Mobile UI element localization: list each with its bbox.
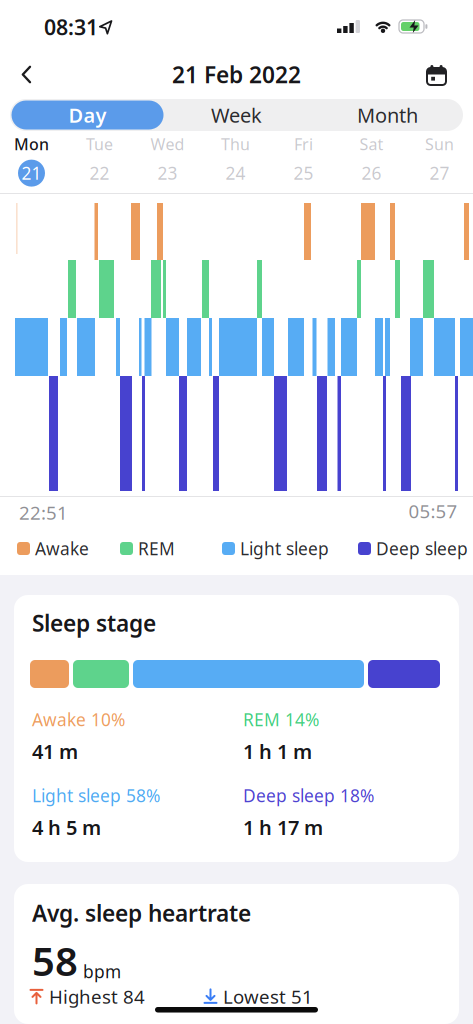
staticText: 41 m	[32, 738, 78, 765]
button[interactable]: Sun	[409, 134, 469, 186]
staticText: 25	[293, 162, 313, 185]
staticText: 22	[89, 162, 109, 185]
button[interactable]: Week	[161, 99, 312, 131]
button[interactable]	[12, 56, 42, 93]
staticText: Highest 84	[49, 984, 145, 1009]
staticText: Sat	[359, 133, 383, 155]
staticText: Deep sleep 18%	[243, 784, 374, 807]
staticText: Month	[357, 102, 418, 128]
staticText: REM 14%	[243, 708, 319, 731]
staticText: 23	[157, 162, 177, 185]
staticText: bpm	[83, 960, 121, 983]
staticText: 08:31	[44, 13, 98, 41]
staticText: Avg. sleep heartrate	[32, 898, 251, 928]
staticText: Day	[68, 102, 106, 128]
staticText: Fri	[294, 133, 313, 155]
staticText: 22:51	[19, 500, 68, 525]
staticText: Awake	[35, 537, 89, 560]
staticText: Thu	[221, 133, 250, 155]
staticText: 26	[361, 162, 381, 185]
staticText: 21 Feb 2022	[172, 59, 301, 89]
button[interactable]: Month	[312, 99, 463, 131]
button[interactable]: Mon	[1, 134, 61, 186]
staticText: Light sleep	[240, 537, 329, 560]
staticText: Week	[211, 102, 262, 128]
staticText: 58	[32, 934, 78, 987]
button[interactable]	[419, 57, 454, 93]
button[interactable]: Thu	[205, 134, 265, 186]
staticText: 21	[21, 162, 41, 185]
staticText: Wed	[150, 133, 184, 155]
staticText: Mon	[14, 133, 49, 155]
button[interactable]: Day	[11, 100, 163, 129]
staticText: 05:57	[408, 499, 457, 523]
staticText: 1 h 1 m	[243, 738, 312, 765]
staticText: Sleep stage	[32, 608, 156, 638]
staticText: Sun	[425, 133, 454, 155]
staticText: Light sleep 58%	[32, 784, 160, 807]
button[interactable]: Wed	[137, 134, 197, 186]
button[interactable]: Tue	[69, 134, 129, 186]
staticText: 24	[225, 162, 245, 185]
button[interactable]: Fri	[273, 134, 333, 186]
staticText: Lowest 51	[223, 984, 313, 1009]
staticText: Awake 10%	[32, 708, 125, 731]
staticText: Tue	[86, 133, 113, 155]
button[interactable]: Sat	[341, 134, 401, 186]
staticText: 4 h 5 m	[32, 814, 101, 841]
staticText: Deep sleep	[376, 537, 468, 560]
staticText: 1 h 17 m	[243, 814, 323, 841]
staticText: REM	[138, 537, 175, 560]
staticText: 27	[429, 162, 449, 185]
